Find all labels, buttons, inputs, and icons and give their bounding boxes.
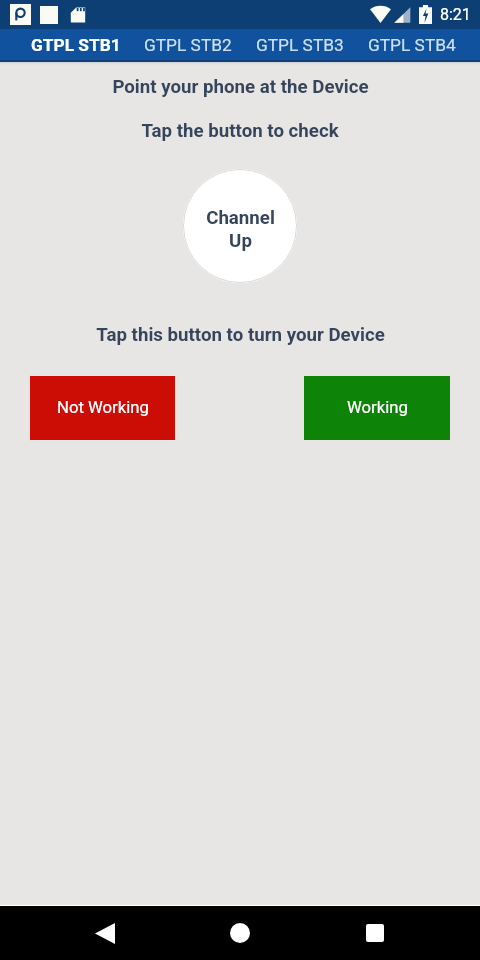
- button[interactable]: GTPL STB4: [356, 29, 468, 60]
- staticText: GTPL STB2: [144, 35, 232, 55]
- staticText: Tap this button to turn your Device: [96, 324, 385, 346]
- button[interactable]: GTPL STB1: [20, 29, 132, 60]
- staticText: GTPL STB1: [31, 35, 121, 55]
- button[interactable]: GTPL STB2: [132, 29, 244, 60]
- staticText: GTPL STB4: [368, 35, 456, 55]
- staticText: Not Working: [57, 398, 149, 418]
- staticText: GTPL STB3: [256, 35, 344, 55]
- staticText: Working: [347, 398, 408, 418]
- button[interactable]: Home: [205, 906, 275, 960]
- button[interactable]: Channel Up: [183, 169, 297, 283]
- staticText: Channel Up: [206, 207, 275, 252]
- staticText: Point your phone at the Device: [112, 76, 369, 98]
- button[interactable]: Recents: [340, 906, 410, 960]
- button[interactable]: Working: [304, 376, 450, 440]
- button[interactable]: Back: [70, 906, 140, 960]
- button[interactable]: GTPL STB3: [244, 29, 356, 60]
- staticText: Tap the button to check: [141, 120, 339, 142]
- staticText: 8:21: [440, 5, 471, 24]
- button[interactable]: Not Working: [30, 376, 175, 440]
